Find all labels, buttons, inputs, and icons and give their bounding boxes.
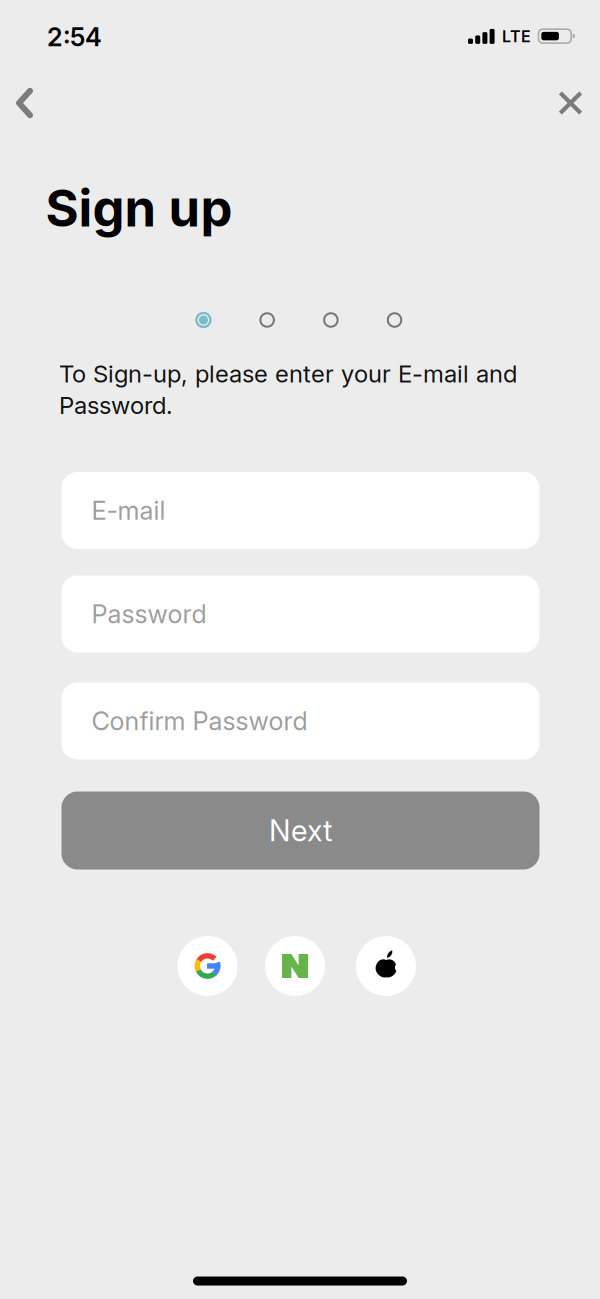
staticText: LTE (502, 27, 531, 46)
staticText: Password (91, 599, 206, 629)
staticText: Password (91, 599, 206, 629)
textField[interactable]: E-mail (91, 496, 539, 525)
staticText: Confirm Password (91, 706, 307, 736)
staticText: Confirm Password (91, 706, 307, 736)
textField[interactable]: Confirm Password (91, 706, 539, 736)
button[interactable]: Sign up with Naver (265, 936, 325, 996)
staticText: Next (269, 813, 332, 848)
staticText: Sign up (45, 178, 232, 238)
staticText: E-mail (91, 496, 165, 525)
staticText: 2:54 (47, 22, 102, 52)
staticText: E-mail (91, 496, 165, 525)
button[interactable]: Sign up with Apple (356, 936, 416, 996)
textField[interactable]: Password (91, 599, 539, 629)
button[interactable]: Close (548, 81, 592, 125)
staticText: To Sign-up, please enter your E-mail and… (59, 360, 517, 419)
button[interactable]: Back (2, 81, 46, 125)
button[interactable]: Sign up with Google (177, 936, 237, 996)
button[interactable]: Next (61, 791, 539, 869)
